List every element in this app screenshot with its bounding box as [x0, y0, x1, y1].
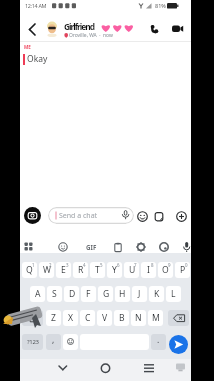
staticText: G — [103, 288, 109, 300]
button[interactable]: I — [141, 262, 156, 278]
button[interactable] — [23, 241, 34, 252]
staticText: GIF — [86, 243, 97, 251]
button[interactable]: D — [64, 286, 79, 302]
button[interactable]: C — [80, 310, 95, 326]
staticText: ME — [24, 44, 31, 50]
staticText: Girlfriend — [64, 21, 95, 32]
staticText: 0 — [185, 262, 188, 268]
staticText: Y — [112, 264, 117, 276]
button[interactable]: K — [149, 286, 164, 302]
staticText: J — [138, 288, 141, 300]
button[interactable] — [159, 242, 169, 252]
staticText: M — [152, 312, 160, 324]
staticText: 5 — [100, 262, 103, 268]
button[interactable]: M — [148, 310, 163, 326]
button[interactable] — [137, 211, 148, 222]
button[interactable] — [58, 242, 68, 252]
button[interactable]: G — [98, 286, 113, 302]
staticText: 9 — [168, 262, 171, 268]
button[interactable]: Q — [22, 262, 37, 278]
button[interactable]: Y — [107, 262, 122, 278]
button[interactable]: X — [63, 310, 78, 326]
button[interactable] — [24, 207, 41, 224]
staticText: Okay — [27, 53, 48, 65]
staticText: Z — [51, 312, 56, 324]
button[interactable] — [172, 25, 184, 33]
staticText: 8 — [151, 262, 154, 268]
staticText: . — [157, 334, 160, 346]
button[interactable]: T — [90, 262, 105, 278]
button[interactable]: . — [151, 334, 166, 350]
button[interactable] — [22, 310, 43, 326]
button[interactable]: B — [114, 310, 129, 326]
button[interactable]: N — [131, 310, 146, 326]
staticText: B — [119, 312, 125, 324]
button[interactable]: W — [39, 262, 54, 278]
staticText: N — [135, 312, 142, 324]
button[interactable] — [169, 335, 188, 354]
button[interactable] — [181, 241, 192, 253]
staticText: W — [43, 264, 51, 276]
staticText: K — [154, 288, 160, 300]
staticText: 1 — [32, 262, 35, 268]
staticText: C — [85, 312, 91, 324]
button[interactable]: L — [166, 286, 181, 302]
button[interactable]: Send a chat — [48, 207, 134, 224]
staticText: R — [78, 264, 84, 276]
staticText: H — [119, 288, 126, 300]
button[interactable] — [27, 23, 37, 36]
button[interactable] — [154, 211, 165, 222]
button[interactable]: R — [73, 262, 88, 278]
button[interactable]: P — [175, 262, 190, 278]
button[interactable]: H — [115, 286, 130, 302]
button[interactable]: J — [132, 286, 147, 302]
staticText: 7 — [134, 262, 137, 268]
button[interactable] — [176, 211, 187, 222]
button[interactable]: Z — [46, 310, 61, 326]
button[interactable]: A — [30, 286, 45, 302]
staticText: I — [147, 264, 150, 276]
staticText: Send a chat — [59, 211, 98, 221]
staticText: 3 — [66, 262, 69, 268]
staticText: T — [95, 264, 100, 276]
staticText: O — [162, 264, 169, 276]
staticText: V — [102, 312, 107, 324]
staticText: P — [180, 264, 185, 276]
button[interactable]: U — [124, 262, 139, 278]
button[interactable]: ?123 — [22, 334, 43, 350]
staticText: 81% — [155, 2, 166, 9]
staticText: , — [52, 334, 55, 346]
button[interactable] — [63, 334, 78, 350]
staticText: Oroville, WA · now — [69, 32, 113, 39]
staticText: 12:14 AM — [25, 2, 47, 9]
staticText: L — [171, 288, 176, 300]
staticText: F — [86, 288, 91, 300]
staticText: Q — [26, 264, 33, 276]
staticText: E — [61, 264, 66, 276]
button[interactable]: S — [47, 286, 62, 302]
staticText: 6 — [117, 262, 120, 268]
staticText: U — [129, 264, 135, 276]
staticText: 4 — [83, 262, 86, 268]
button[interactable] — [136, 242, 146, 252]
button[interactable] — [113, 242, 123, 252]
button[interactable] — [150, 24, 160, 34]
button[interactable]: E — [56, 262, 71, 278]
button[interactable]: F — [81, 286, 96, 302]
staticText: A — [35, 288, 41, 300]
button[interactable]: V — [97, 310, 112, 326]
button[interactable]: , — [46, 334, 61, 350]
button[interactable]: O — [158, 262, 173, 278]
staticText: D — [69, 288, 75, 300]
staticText: S — [52, 288, 57, 300]
staticText: X — [68, 312, 73, 324]
button[interactable] — [168, 310, 189, 326]
staticText: ?123 — [27, 338, 39, 346]
staticText: 2 — [49, 262, 52, 268]
